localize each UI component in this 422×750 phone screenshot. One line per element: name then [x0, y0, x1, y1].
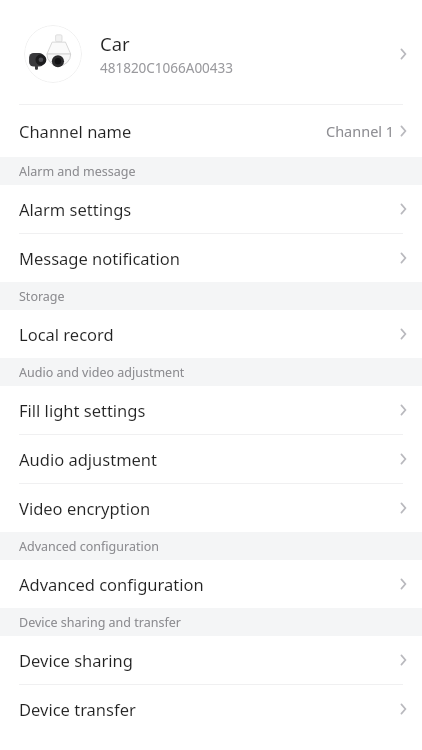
button[interactable]: Message notification — [0, 234, 422, 282]
staticText: Storage — [19, 288, 65, 305]
staticText: Audio and video adjustment — [19, 364, 185, 381]
staticText: Device transfer — [19, 698, 136, 720]
button[interactable]: Local record — [0, 310, 422, 358]
staticText: Device sharing — [19, 649, 133, 671]
button[interactable]: Video encryption — [0, 484, 422, 532]
button[interactable]: Alarm settings — [0, 185, 422, 233]
staticText: Local record — [19, 323, 114, 345]
staticText: 481820C1066A00433 — [100, 59, 233, 77]
staticText: Fill light settings — [19, 399, 146, 421]
staticText: Alarm and message — [19, 163, 136, 180]
button[interactable]: Audio adjustment — [0, 435, 422, 483]
button[interactable]: Device sharing — [0, 636, 422, 684]
staticText: Advanced configuration — [19, 573, 204, 595]
staticText: Channel name — [19, 120, 132, 142]
button[interactable]: Advanced configuration — [0, 560, 422, 608]
staticText: Advanced configuration — [19, 538, 159, 555]
button[interactable]: Device transfer — [0, 685, 422, 733]
staticText: Channel 1 — [326, 121, 395, 141]
staticText: Video encryption — [19, 497, 151, 519]
staticText: Car — [100, 31, 130, 56]
button[interactable]: Channel name — [0, 105, 422, 157]
button[interactable]: Fill light settings — [0, 386, 422, 434]
button[interactable]: Car — [0, 4, 422, 104]
staticText: Audio adjustment — [19, 448, 158, 470]
staticText: Device sharing and transfer — [19, 614, 181, 631]
staticText: Message notification — [19, 247, 180, 269]
staticText: Alarm settings — [19, 198, 132, 220]
